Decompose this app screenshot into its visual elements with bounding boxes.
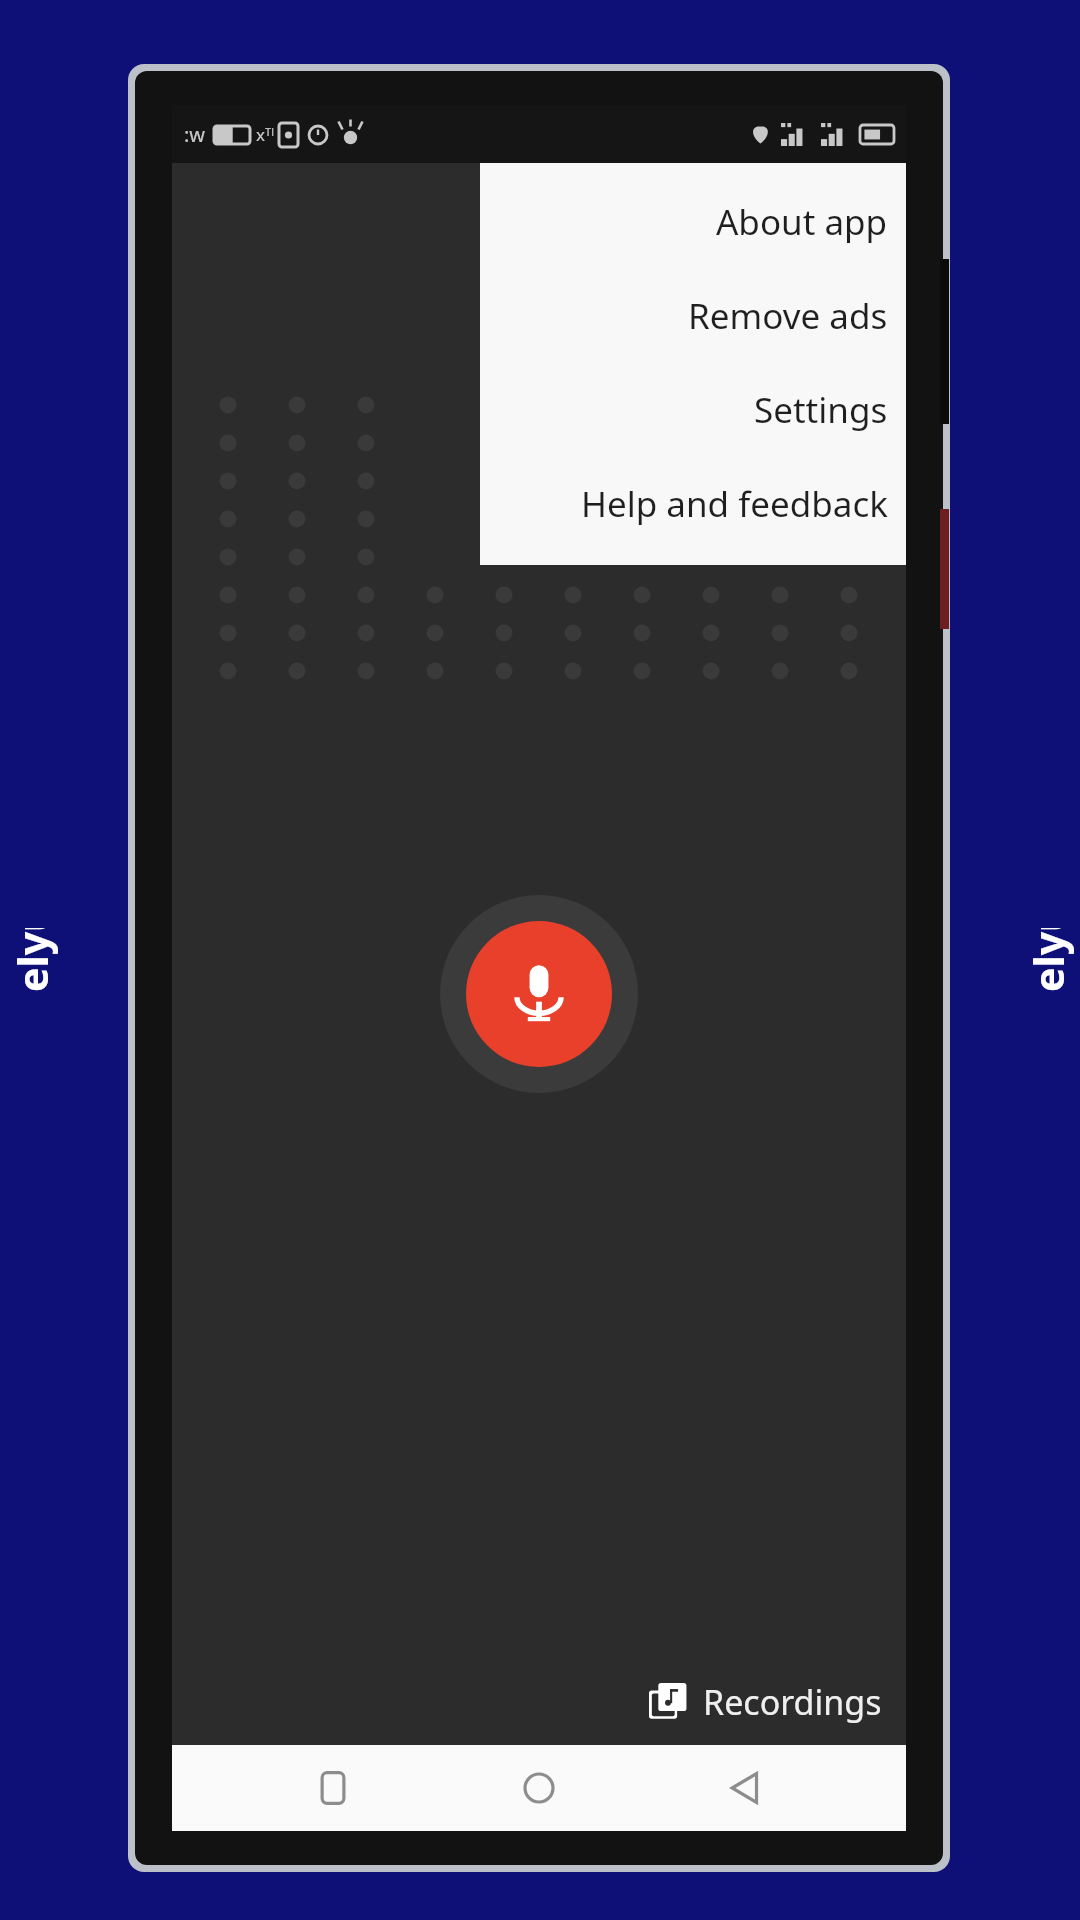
button[interactable]: Home	[494, 1745, 584, 1831]
staticText: Help and feedback	[581, 480, 888, 528]
staticText: xᵀˡ	[256, 123, 274, 146]
button[interactable]: Record	[440, 895, 638, 1093]
staticText: Settings	[754, 386, 888, 434]
button[interactable]: Help and feedback	[480, 457, 906, 551]
staticText: Recordings	[703, 1679, 882, 1725]
button[interactable]: Recordings	[639, 1669, 892, 1735]
button[interactable]: Settings	[480, 363, 906, 457]
staticText: About app	[716, 198, 888, 246]
button[interactable]: About app	[480, 175, 906, 269]
staticText: elyusuf-ultra.com| elyusuf-ultra.com| el…	[1020, 928, 1076, 992]
button[interactable]: Back	[700, 1745, 790, 1831]
button[interactable]: Remove ads	[480, 269, 906, 363]
button[interactable]: Recent apps	[288, 1745, 378, 1831]
staticText: :w	[184, 121, 206, 148]
staticText: Remove ads	[688, 292, 888, 340]
staticText: elyusuf-ultra.com| elyusuf-ultra.com| el…	[4, 928, 60, 992]
